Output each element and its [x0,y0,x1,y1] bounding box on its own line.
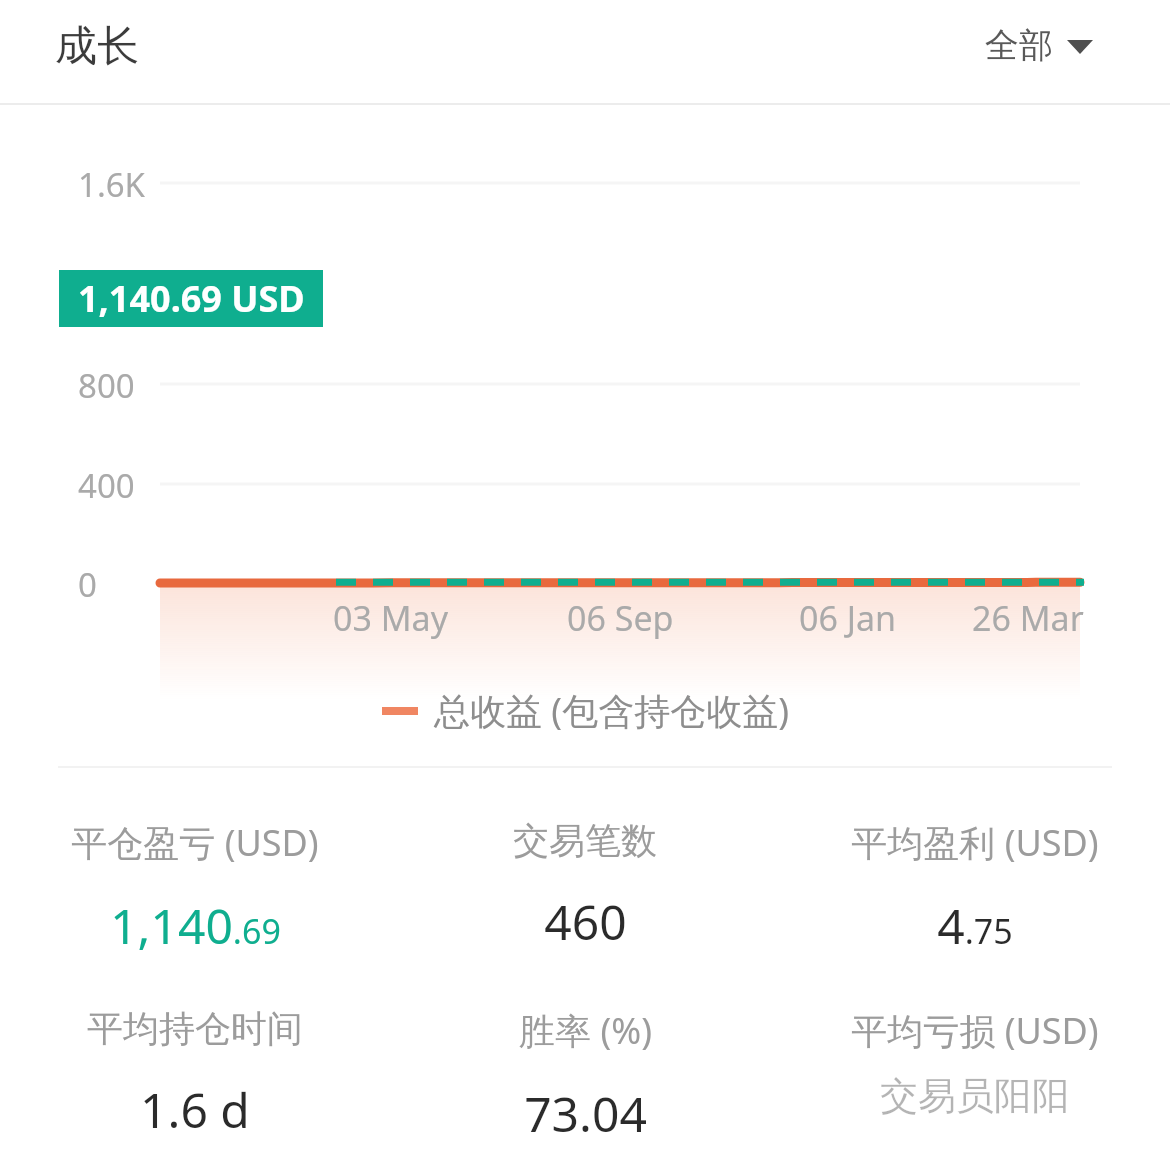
button[interactable]: 平均亏损 (USD) [780,1006,1170,1081]
staticText: 1,140.69 [110,893,281,958]
staticText: 1,140.69 USD [78,274,305,323]
staticText: 总收益 (包含持仓收益) [434,686,789,735]
staticText: 平均亏损 (USD) [851,1006,1099,1055]
button[interactable]: 总收益 (包含持仓收益) [382,686,789,735]
staticText: 全部 [985,24,1053,67]
button[interactable]: 全部 [985,24,1093,67]
staticText: 4.75 [937,893,1013,958]
staticText: 0 [78,562,97,607]
button[interactable]: 平均盈利 (USD) [780,818,1170,958]
staticText: 1.6 d [140,1077,250,1142]
staticText: 06 Sep [567,595,674,641]
staticText: 26 Mar [972,595,1084,641]
staticText: 400 [78,463,135,508]
staticText: 平均持仓时间 [87,1006,303,1051]
staticText: 73.04 [524,1081,647,1146]
staticText: 06 Jan [799,595,897,641]
staticText: 03 May [333,595,448,641]
other: Filter dropdown [1067,36,1093,56]
staticText: 1.6K [78,162,146,207]
staticText: 平均盈利 (USD) [851,818,1099,867]
staticText: 460 [544,889,627,954]
staticText: 800 [78,363,135,408]
button[interactable]: 交易笔数 [390,818,780,954]
staticText: 交易员阳阳 [880,1072,1070,1120]
staticText: 胜率 (%) [519,1006,652,1055]
button[interactable]: 胜率 (%) [390,1006,780,1146]
button[interactable]: 平均持仓时间 [0,1006,390,1142]
staticText: 平仓盈亏 (USD) [71,818,319,867]
staticText: 交易笔数 [513,818,657,863]
button[interactable]: 1,140.69 USD [59,270,323,327]
button[interactable]: 平仓盈亏 (USD) [0,818,390,958]
button[interactable]: 成长 [55,20,139,73]
